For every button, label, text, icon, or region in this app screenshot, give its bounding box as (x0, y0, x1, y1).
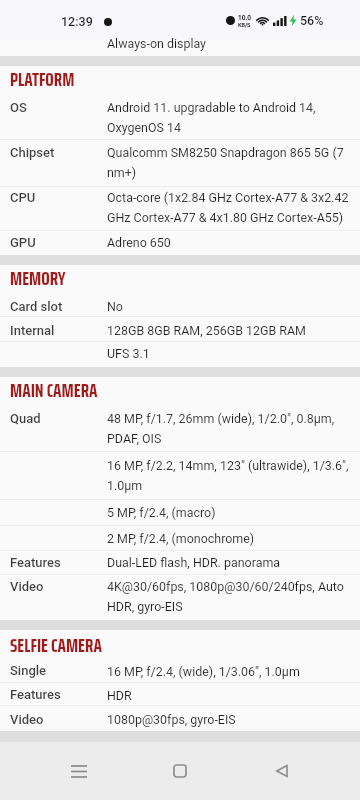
staticText: Android 11. upgradable to Android 14, Ox… (107, 100, 316, 135)
button[interactable]: Recent apps (57, 749, 101, 793)
staticText: 16 MP, f/2.2, 14mm, 123" (ultrawide), 1/… (107, 458, 349, 493)
staticText: Quad (10, 411, 41, 426)
staticText: KB/S (238, 22, 251, 28)
staticText: 128GB 8GB RAM, 256GB 12GB RAM (107, 323, 306, 338)
staticText: 5 MP, f/2.4, (macro) (107, 505, 216, 520)
staticText: 2 MP, f/2.4, (monochrome) (107, 531, 255, 546)
staticText: HDR (107, 688, 132, 703)
button[interactable]: Back (259, 749, 303, 793)
button[interactable]: Home (158, 749, 202, 793)
staticText: Dual-LED flash, HDR. panorama (107, 555, 281, 570)
staticText: GPU (10, 235, 36, 250)
staticText: Card slot (10, 299, 63, 314)
staticText: 12:39 (61, 14, 93, 29)
staticText: 4K@30/60fps, 1080p@30/60/240fps, Auto HD… (107, 579, 344, 614)
staticText: 1080p@30fps, gyro-EIS (107, 712, 236, 727)
staticText: SELFIE CAMERA (10, 629, 102, 661)
staticText: Video (10, 712, 44, 727)
staticText: Octa-core (1x2.84 GHz Cortex-A77 & 3x2.4… (107, 190, 349, 225)
staticText: MAIN CAMERA (10, 374, 98, 406)
staticText: No (107, 299, 123, 314)
staticText: Adreno 650 (107, 235, 171, 250)
staticText: Internal (10, 323, 55, 338)
staticText: 48 MP, f/1.7, 26mm (wide), 1/2.0", 0.8µm… (107, 411, 335, 446)
staticText: CPU (10, 190, 36, 205)
staticText: 56% (300, 13, 324, 28)
staticText: UFS 3.1 (107, 346, 150, 361)
staticText: Chipset (10, 145, 55, 160)
staticText: Single (10, 663, 47, 678)
staticText: 16 MP, f/2.4, (wide), 1/3.06", 1.0µm (107, 664, 300, 679)
staticText: Always-on display (107, 36, 206, 51)
staticText: Video (10, 579, 44, 594)
staticText: OS (10, 100, 27, 115)
staticText: PLATFORM (10, 63, 75, 95)
staticText: Features (10, 687, 61, 702)
staticText: 10.0 (238, 14, 251, 22)
staticText: Features (10, 555, 61, 570)
staticText: Qualcomm SM8250 Snapdragon 865 5G (7 nm+… (107, 145, 344, 180)
staticText: MEMORY (10, 262, 66, 294)
